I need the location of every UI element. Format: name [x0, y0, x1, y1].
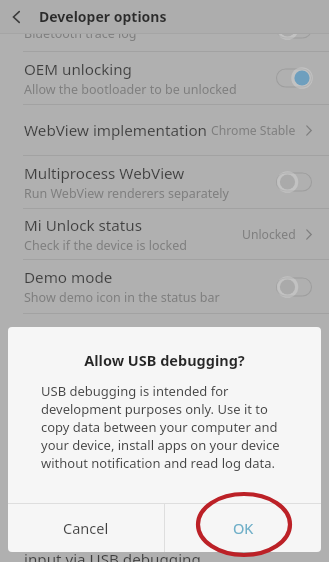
button[interactable]: WebView implementation	[0, 105, 329, 155]
button[interactable]: OEM unlocking	[0, 52, 329, 104]
staticText: Mi Unlock status	[24, 215, 143, 236]
button[interactable]: Mi Unlock status	[0, 209, 329, 259]
staticText: OEM unlocking	[24, 59, 132, 80]
button[interactable]: Demo mode	[0, 260, 329, 313]
staticText: Chrome Stable	[211, 122, 296, 139]
staticText: Unlocked	[242, 226, 296, 243]
staticText: USB debugging is intended for developmen…	[41, 382, 293, 472]
staticText: OK	[233, 518, 254, 538]
button[interactable]: Multiprocess WebView	[0, 156, 329, 208]
button[interactable]: Cancel	[8, 504, 164, 552]
button[interactable]: OK	[165, 504, 321, 552]
button[interactable]: Back	[0, 0, 34, 33]
staticText: Developer options	[39, 7, 167, 26]
staticText: Check if the device is locked	[24, 237, 187, 254]
staticText: Bluetooth trace log	[24, 25, 137, 42]
staticText: input via USB debugging	[24, 549, 201, 562]
staticText: Demo mode	[24, 267, 113, 288]
staticText: Cancel	[63, 518, 109, 538]
staticText: Multiprocess WebView	[24, 163, 185, 184]
staticText: Run WebView renderers separately	[24, 185, 229, 202]
staticText: WebView implementation	[24, 120, 207, 141]
staticText: Allow the bootloader to be unlocked	[24, 81, 237, 98]
staticText: Show demo icon in the status bar	[24, 289, 220, 306]
staticText: Allow USB debugging?	[8, 350, 321, 370]
